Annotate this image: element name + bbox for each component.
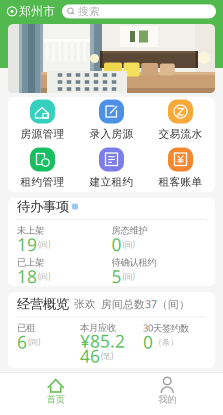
staticText: 房态维护: [111, 225, 147, 236]
staticText: 30天签约数: [143, 322, 189, 334]
staticText: 18: [17, 265, 37, 288]
button[interactable]: 录入房源: [77, 99, 146, 141]
button[interactable]: 租约管理: [8, 147, 77, 189]
staticText: 郑州市: [19, 4, 55, 19]
staticText: 首页: [47, 394, 65, 405]
staticText: 46: [80, 344, 100, 367]
button[interactable]: 我的: [111, 377, 223, 405]
staticText: 搜索: [78, 5, 100, 18]
staticText: 租客账单: [158, 175, 202, 188]
button[interactable]: 交易流水: [146, 99, 215, 141]
staticText: 5: [111, 265, 121, 288]
button[interactable]: 搜索: [62, 4, 216, 18]
staticText: 未上架: [17, 225, 44, 236]
staticText: 已上架: [17, 257, 44, 268]
staticText: 本月应收: [80, 322, 116, 334]
staticText: 0: [143, 330, 153, 353]
staticText: (间): [28, 337, 40, 347]
button[interactable]: 郑州市: [7, 4, 55, 19]
staticText: 待办事项: [17, 198, 69, 215]
staticText: (间): [122, 239, 134, 250]
staticText: 房源管理: [20, 127, 64, 140]
staticText: 房间总数37（间）: [101, 297, 190, 311]
staticText: （条）: [154, 337, 178, 347]
staticText: 0: [111, 233, 121, 256]
staticText: 已租: [17, 322, 35, 334]
staticText: 建立租约: [89, 175, 133, 188]
staticText: 经营概览: [17, 296, 69, 312]
button[interactable]: 首页: [0, 377, 111, 405]
staticText: 我的: [158, 394, 176, 405]
button[interactable]: 租客账单: [146, 147, 215, 189]
staticText: 6: [17, 330, 27, 353]
staticText: 租约管理: [20, 175, 64, 188]
staticText: (间): [38, 239, 50, 250]
staticText: 张欢: [74, 297, 96, 310]
staticText: 交易流水: [158, 127, 202, 140]
staticText: (间): [38, 271, 50, 282]
staticText: (间): [122, 271, 134, 282]
button[interactable]: 房源管理: [8, 99, 77, 141]
button[interactable]: 建立租约: [77, 147, 146, 189]
staticText: (笔): [101, 351, 113, 361]
staticText: 19: [17, 233, 37, 256]
staticText: 待确认租约: [111, 257, 156, 268]
staticText: 录入房源: [89, 127, 133, 140]
staticText: ¥85.2: [80, 329, 125, 352]
